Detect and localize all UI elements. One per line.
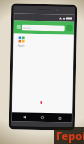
button[interactable]: Menu	[15, 23, 22, 30]
button[interactable]: Account	[66, 24, 73, 32]
button[interactable]: Back	[18, 112, 30, 122]
staticText: Apps	[17, 43, 25, 48]
staticText: Героі	[56, 128, 84, 143]
button[interactable]	[22, 24, 65, 31]
button[interactable]: Recents	[54, 113, 66, 122]
button[interactable]: Home	[36, 113, 48, 122]
